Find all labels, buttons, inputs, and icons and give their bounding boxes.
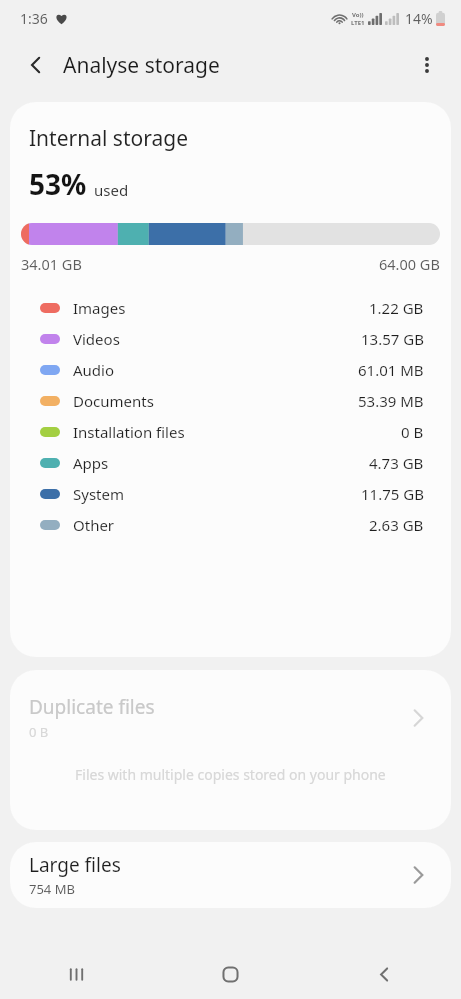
staticText: 0 B [29, 723, 49, 741]
staticText: 34.01 GB [21, 254, 82, 274]
button[interactable]: Back [14, 43, 58, 87]
button[interactable]: Large files [10, 842, 451, 908]
staticText: Audio [73, 360, 115, 380]
staticText: 2.63 GB [369, 515, 424, 535]
button[interactable]: Back [307, 950, 461, 999]
button[interactable]: Apps [10, 447, 451, 478]
staticText: Large files [29, 852, 121, 878]
staticText: 4.73 GB [369, 453, 424, 473]
staticText: 13.57 GB [361, 329, 424, 349]
staticText: Images [73, 298, 126, 318]
staticText: 14% [405, 9, 433, 28]
staticText: Files with multiple copies stored on you… [75, 765, 386, 784]
staticText: 11.75 GB [361, 484, 424, 504]
button[interactable]: System [10, 478, 451, 509]
staticText: System [73, 484, 124, 504]
staticText: Vo)) [352, 11, 364, 19]
staticText: Documents [73, 391, 154, 411]
staticText: used [94, 180, 129, 200]
staticText: LTE1 [351, 19, 365, 27]
button[interactable]: Internal storage [10, 102, 451, 657]
staticText: 53% [29, 165, 87, 203]
button[interactable]: More options [405, 43, 449, 87]
staticText: Other [73, 515, 115, 535]
staticText: Videos [73, 329, 120, 349]
button[interactable]: Installation files [10, 416, 451, 447]
staticText: 1.22 GB [369, 298, 424, 318]
button[interactable]: Images [10, 292, 451, 323]
staticText: 0 B [401, 422, 424, 442]
staticText: Internal storage [29, 124, 188, 153]
staticText: Analyse storage [63, 51, 220, 80]
button[interactable]: Documents [10, 385, 451, 416]
staticText: Installation files [73, 422, 185, 442]
staticText: 1:36 [20, 9, 48, 28]
staticText: 64.00 GB [379, 254, 440, 274]
button[interactable]: Recent apps [0, 950, 153, 999]
staticText: Apps [73, 453, 109, 473]
button[interactable]: Duplicate files [10, 670, 451, 830]
button[interactable]: Home [153, 950, 307, 999]
button[interactable]: Other [10, 509, 451, 540]
button[interactable]: Audio [10, 354, 451, 385]
staticText: 754 MB [29, 880, 75, 898]
staticText: 61.01 MB [358, 360, 424, 380]
button[interactable]: Videos [10, 323, 451, 354]
staticText: Duplicate files [29, 694, 155, 720]
staticText: 53.39 MB [358, 391, 424, 411]
